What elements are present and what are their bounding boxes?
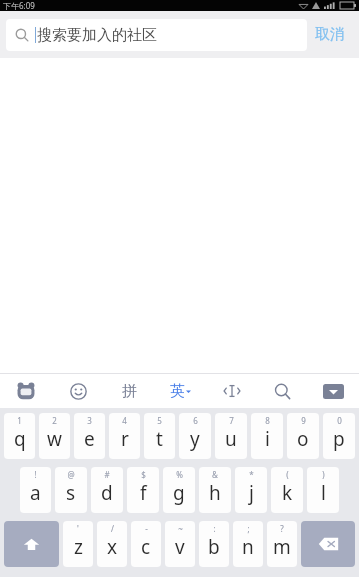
staticText: 取消: [315, 25, 345, 44]
staticText: f: [140, 480, 147, 506]
staticText: 下午6:09: [3, 0, 35, 11]
staticText: e: [84, 426, 95, 452]
button[interactable]: Pinyin mode: [104, 374, 155, 408]
staticText: $: [141, 469, 146, 480]
staticText: @: [67, 469, 75, 480]
staticText: ': [77, 523, 79, 534]
button[interactable]: Shift: [4, 521, 59, 567]
button[interactable]: /: [97, 521, 127, 567]
staticText: 1: [17, 415, 22, 426]
staticText: z: [74, 534, 83, 560]
staticText: 9: [301, 415, 306, 426]
button[interactable]: 7: [215, 413, 247, 459]
button[interactable]: &: [199, 467, 231, 513]
staticText: 4: [122, 415, 127, 426]
staticText: k: [282, 480, 293, 506]
staticText: 5: [157, 415, 162, 426]
button[interactable]: #: [91, 467, 123, 513]
staticText: ): [322, 469, 325, 480]
button[interactable]: 8: [251, 413, 283, 459]
staticText: s: [66, 480, 76, 506]
staticText: l: [321, 480, 326, 506]
staticText: d: [101, 480, 113, 506]
staticText: t: [156, 426, 163, 452]
button[interactable]: (: [271, 467, 303, 513]
staticText: 6: [193, 415, 198, 426]
staticText: c: [141, 534, 151, 560]
staticText: 3: [87, 415, 92, 426]
button[interactable]: ): [307, 467, 339, 513]
staticText: /: [111, 523, 114, 534]
staticText: j: [249, 480, 254, 506]
staticText: &: [212, 469, 218, 480]
staticText: y: [190, 426, 200, 452]
staticText: g: [173, 480, 185, 506]
staticText: u: [225, 426, 237, 452]
button[interactable]: 4: [109, 413, 140, 459]
button[interactable]: $: [127, 467, 159, 513]
button[interactable]: 1: [4, 413, 35, 459]
button[interactable]: @: [55, 467, 87, 513]
staticText: w: [47, 426, 62, 452]
staticText: -: [145, 523, 148, 534]
staticText: a: [30, 480, 41, 506]
button[interactable]: Hide keyboard: [308, 374, 359, 408]
staticText: 英: [170, 382, 185, 401]
staticText: m: [273, 534, 291, 560]
staticText: p: [333, 426, 345, 452]
staticText: 2: [52, 415, 57, 426]
button[interactable]: !: [20, 467, 51, 513]
staticText: (: [286, 469, 289, 480]
staticText: #: [104, 469, 110, 480]
staticText: q: [14, 426, 26, 452]
staticText: v: [175, 534, 185, 560]
staticText: ~: [178, 523, 183, 534]
button[interactable]: :: [199, 521, 229, 567]
button[interactable]: Move cursor: [206, 374, 257, 408]
button[interactable]: English mode: [155, 374, 206, 408]
staticText: 拼: [122, 382, 137, 401]
button[interactable]: Search: [257, 374, 308, 408]
button[interactable]: ~: [165, 521, 195, 567]
button[interactable]: 9: [287, 413, 319, 459]
button[interactable]: ': [63, 521, 93, 567]
staticText: ;: [247, 523, 250, 534]
button[interactable]: 5: [144, 413, 175, 459]
button[interactable]: 2: [39, 413, 70, 459]
staticText: 0: [337, 415, 342, 426]
staticText: *: [249, 469, 254, 480]
staticText: ?: [280, 523, 284, 534]
button[interactable]: 6: [179, 413, 211, 459]
staticText: !: [34, 469, 37, 480]
staticText: :: [213, 523, 216, 534]
staticText: i: [265, 426, 270, 452]
button[interactable]: 搜索要加入的社区: [6, 19, 307, 51]
staticText: b: [208, 534, 220, 560]
staticText: 搜索要加入的社区: [37, 26, 157, 45]
staticText: n: [242, 534, 254, 560]
button[interactable]: -: [131, 521, 161, 567]
button[interactable]: Baidu IME: [0, 374, 52, 408]
button[interactable]: %: [163, 467, 195, 513]
button[interactable]: Emoji: [52, 374, 104, 408]
staticText: 7: [229, 415, 234, 426]
staticText: 8: [265, 415, 270, 426]
button[interactable]: 0: [323, 413, 355, 459]
button[interactable]: ?: [267, 521, 297, 567]
staticText: h: [209, 480, 221, 506]
staticText: r: [121, 426, 129, 452]
button[interactable]: Backspace: [301, 521, 355, 567]
staticText: x: [107, 534, 118, 560]
staticText: o: [297, 426, 309, 452]
button[interactable]: ;: [233, 521, 263, 567]
button[interactable]: 取消: [307, 17, 353, 52]
button[interactable]: *: [235, 467, 267, 513]
staticText: %: [176, 469, 183, 480]
button[interactable]: 3: [74, 413, 105, 459]
